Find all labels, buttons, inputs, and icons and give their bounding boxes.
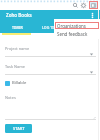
staticText: Zoho Books: [6, 12, 32, 18]
button[interactable]: START: [5, 124, 32, 133]
button[interactable]: More options: [88, 11, 97, 20]
staticText: Notes: [5, 95, 16, 100]
staticText: Send feedback: [57, 31, 88, 37]
staticText: Billable: [12, 80, 27, 86]
button[interactable]: TIMER: [1, 22, 34, 33]
staticText: Project name: [5, 46, 30, 51]
button[interactable]: Settings: [80, 2, 87, 9]
button[interactable]: Search: [72, 2, 79, 9]
staticText: Task Name: [5, 64, 25, 69]
button[interactable]: Send feedback: [55, 30, 99, 37]
staticText: Organizations: [57, 23, 86, 29]
staticText: TIMER: [12, 25, 23, 30]
staticText: LOG TIME: [42, 25, 59, 30]
button[interactable]: LOG TIME: [34, 22, 67, 33]
button[interactable]: Billable: [5, 79, 27, 87]
staticText: START: [13, 126, 25, 131]
button[interactable]: Organizations: [55, 22, 99, 29]
button[interactable]: Toggle device toolbar: [89, 1, 98, 9]
